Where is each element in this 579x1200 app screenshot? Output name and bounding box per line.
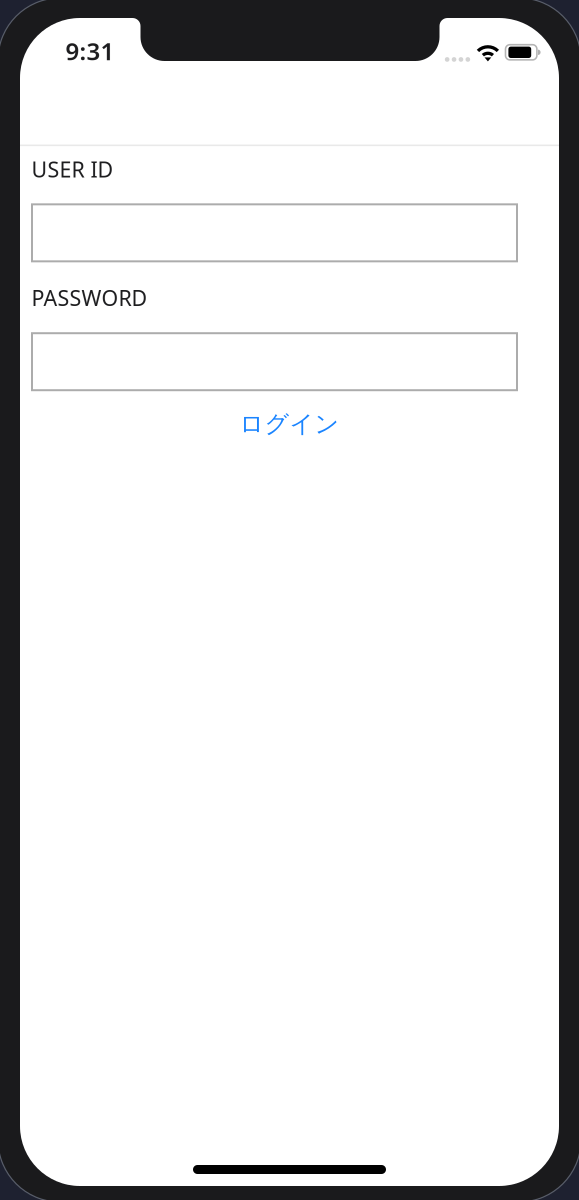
staticText: ログイン [239, 409, 339, 439]
staticText: USER ID [31, 155, 113, 183]
staticText: PASSWORD [31, 283, 147, 312]
button[interactable]: Password text field [32, 333, 517, 390]
button[interactable]: User ID text field [32, 204, 517, 261]
button[interactable]: ログイン [47, 404, 532, 444]
staticText: 9:31 [65, 35, 114, 67]
